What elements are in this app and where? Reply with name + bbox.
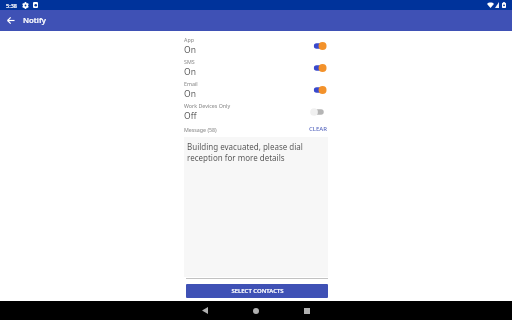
staticText: Building evacuated, please dial receptio…: [187, 141, 325, 163]
button[interactable]: SELECT CONTACTS: [186, 284, 328, 298]
staticText: On: [184, 88, 196, 100]
staticText: SMS: [184, 58, 195, 65]
staticText: Message (58): [184, 126, 217, 133]
staticText: Off: [184, 110, 197, 122]
button[interactable]: App: [184, 35, 328, 57]
staticText: Email: [184, 80, 198, 87]
button[interactable]: CLEAR: [309, 125, 328, 133]
button[interactable]: SMS: [184, 57, 328, 79]
button[interactable]: Email: [184, 79, 328, 101]
staticText: 5:38: [6, 2, 17, 9]
button[interactable]: Toggle on: [308, 83, 328, 97]
button[interactable]: Home: [239, 301, 273, 320]
button[interactable]: Toggle off: [308, 105, 328, 119]
staticText: App: [184, 36, 194, 43]
staticText: Notify: [23, 15, 46, 26]
button[interactable]: Building evacuated, please dial receptio…: [187, 141, 325, 277]
staticText: On: [184, 66, 196, 78]
staticText: SELECT CONTACTS: [231, 287, 284, 295]
button[interactable]: Back: [3, 10, 19, 31]
staticText: CLEAR: [309, 125, 328, 133]
button[interactable]: Toggle on: [308, 39, 328, 53]
staticText: On: [184, 44, 196, 56]
button[interactable]: Work Devices Only: [184, 101, 328, 123]
button[interactable]: Toggle on: [308, 61, 328, 75]
button[interactable]: Recent apps: [290, 301, 324, 320]
button[interactable]: Back: [188, 301, 222, 320]
staticText: Work Devices Only: [184, 102, 231, 109]
